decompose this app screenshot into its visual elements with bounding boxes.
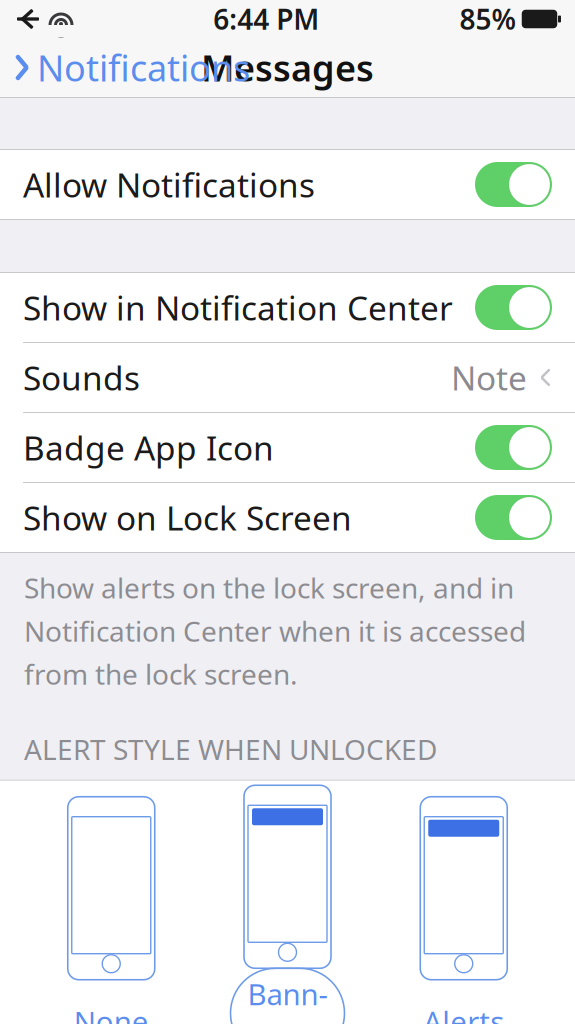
- button[interactable]: Badge App Icon: [0, 413, 575, 482]
- staticText: Show in Notification Center: [23, 285, 453, 330]
- staticText: Notifications: [37, 44, 250, 91]
- button[interactable]: Banners: [222, 797, 352, 1024]
- staticText: Messages: [201, 44, 374, 91]
- staticText: 85%: [459, 0, 516, 38]
- button[interactable]: Notifications: [0, 38, 250, 97]
- staticText: None: [74, 1002, 149, 1024]
- staticText: Show on Lock Screen: [23, 495, 352, 540]
- button[interactable]: Sounds: [0, 343, 575, 412]
- staticText: 6:44 PM: [213, 0, 319, 38]
- button[interactable]: Show in Notification Center: [0, 273, 575, 342]
- staticText: ALERT STYLE WHEN UNLOCKED: [24, 730, 437, 768]
- staticText: Badge App Icon: [23, 425, 274, 470]
- staticText: Note: [451, 355, 527, 400]
- button[interactable]: Allow Notifications: [0, 150, 575, 219]
- button[interactable]: Show on Lock Screen: [0, 483, 575, 552]
- button[interactable]: None: [46, 797, 176, 1024]
- staticText: Alerts: [423, 1002, 504, 1024]
- staticText: Show alerts on the lock screen, and in N…: [24, 569, 526, 692]
- staticText: Allow Notifications: [23, 162, 315, 207]
- staticText: Sounds: [23, 355, 140, 400]
- button[interactable]: Alerts: [399, 797, 529, 1024]
- staticText: Banners: [247, 974, 327, 1024]
